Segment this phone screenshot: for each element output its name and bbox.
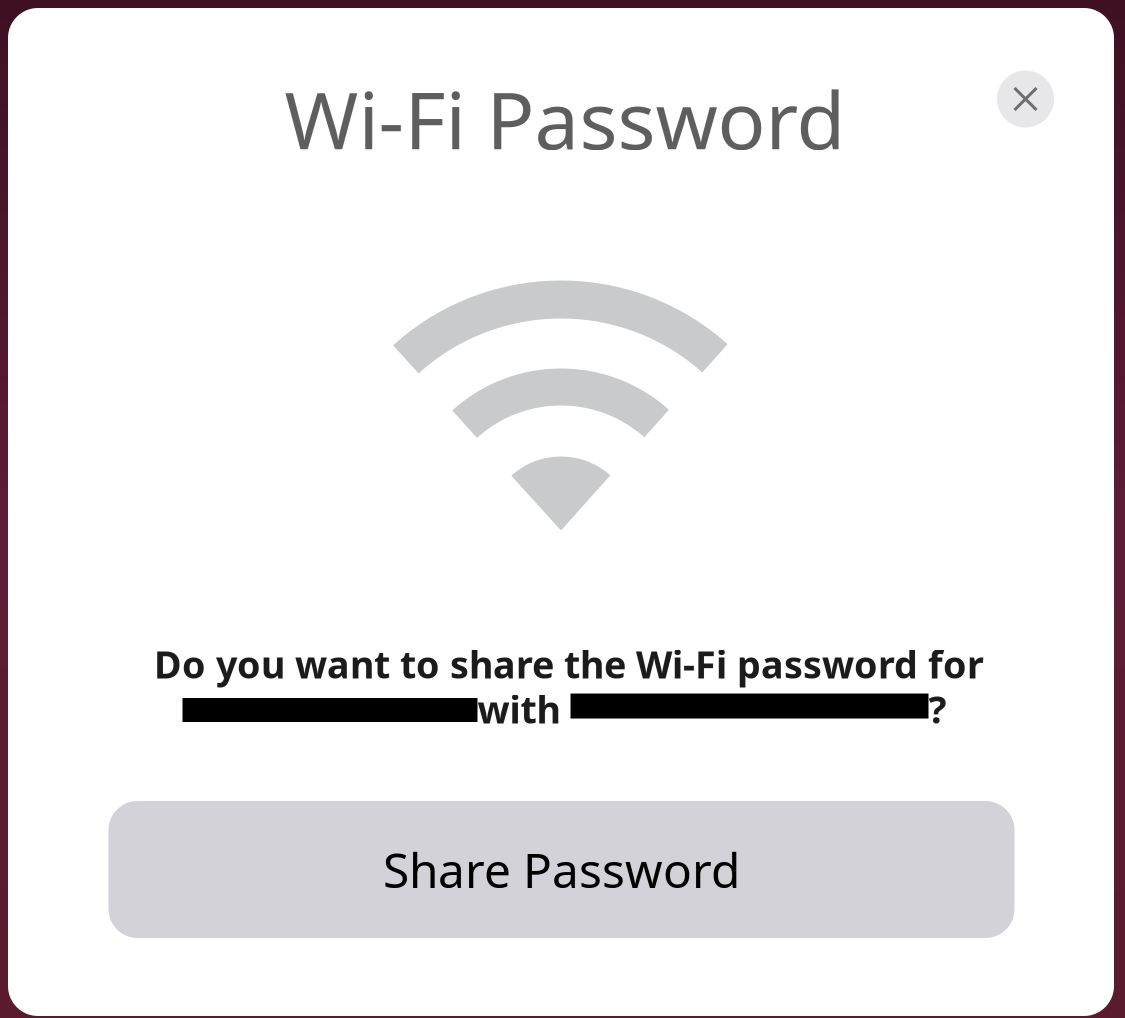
staticText: Do you want to share the Wi-Fi password … (154, 638, 984, 690)
button[interactable]: Share Password (108, 801, 1014, 938)
staticText: with (477, 683, 570, 735)
staticText: Share Password (383, 837, 740, 902)
button[interactable]: Close (997, 70, 1054, 127)
staticText: Wi-Fi Password (284, 64, 845, 173)
staticText: ? (928, 683, 946, 735)
